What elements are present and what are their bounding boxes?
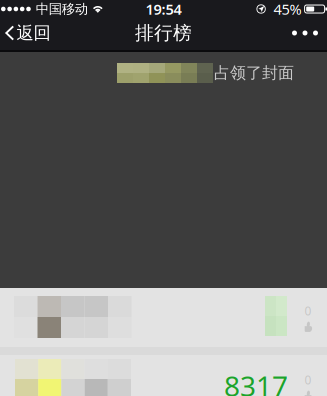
staticText: 排行榜 (135, 21, 192, 44)
button[interactable]: More (282, 16, 327, 50)
button[interactable]: 返回 (0, 16, 59, 50)
staticText: 19:54 (145, 0, 181, 19)
button[interactable]: 8317 (0, 355, 327, 396)
staticText: 8317 (224, 367, 288, 396)
button[interactable]: 0 (0, 288, 327, 347)
staticText: 返回 (17, 22, 51, 44)
staticText: 0 (304, 303, 311, 319)
staticText: 占领了封面 (214, 63, 294, 83)
staticText: 45% (274, 0, 302, 19)
staticText: 中国移动 (36, 1, 88, 17)
staticText: 0 (304, 372, 311, 388)
